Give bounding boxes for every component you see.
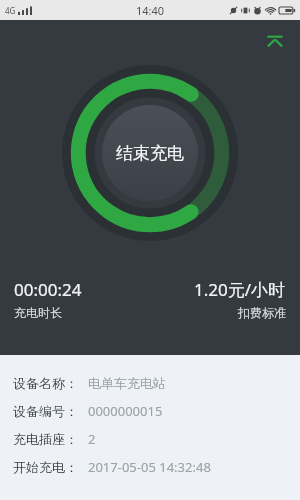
- staticText: 2017-05-05 14:32:48: [88, 458, 211, 476]
- staticText: 充电时长: [14, 305, 62, 320]
- staticText: 设备名称：: [13, 375, 78, 391]
- staticText: 14:40: [136, 3, 165, 18]
- staticText: 0000000015: [88, 402, 163, 420]
- staticText: 1.20元/小时: [194, 278, 286, 301]
- staticText: 4G: [5, 5, 16, 16]
- button[interactable]: Collapse: [258, 24, 292, 58]
- staticText: 设备编号：: [13, 403, 78, 419]
- staticText: 充电插座：: [13, 431, 78, 447]
- staticText: 结束充电: [116, 143, 184, 164]
- staticText: 00:00:24: [14, 278, 82, 301]
- staticText: 扣费标准: [238, 305, 286, 320]
- button[interactable]: 结束充电: [102, 105, 198, 201]
- staticText: 2: [88, 430, 96, 448]
- staticText: 开始充电：: [13, 459, 78, 475]
- staticText: 电单车充电站: [88, 375, 166, 391]
